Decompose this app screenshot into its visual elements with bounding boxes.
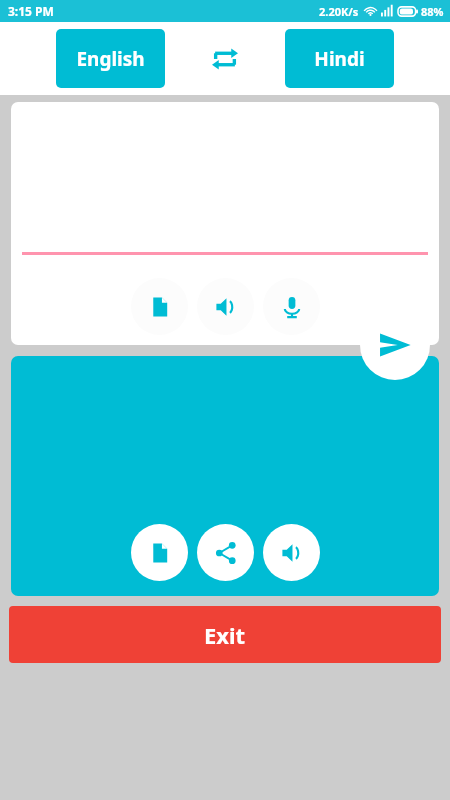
button[interactable]: Copy translation [131,524,188,581]
staticText: Exit [204,620,246,650]
staticText: English [76,46,145,72]
button[interactable]: Speak translation [263,524,320,581]
button[interactable]: Share [197,524,254,581]
staticText: Hindi [314,46,365,72]
button[interactable]: Send [360,310,430,380]
button[interactable]: Exit [9,606,441,663]
button[interactable]: Speak text [197,278,254,335]
staticText: 2.20K/s [319,4,359,19]
button[interactable]: English [56,29,165,88]
button[interactable]: Voice input [263,278,320,335]
button[interactable]: Hindi [285,29,394,88]
staticText: 88% [421,4,444,19]
button[interactable]: Copy text [131,278,188,335]
button[interactable]: Swap languages [199,33,251,85]
staticText: 3:15 PM [8,3,54,19]
